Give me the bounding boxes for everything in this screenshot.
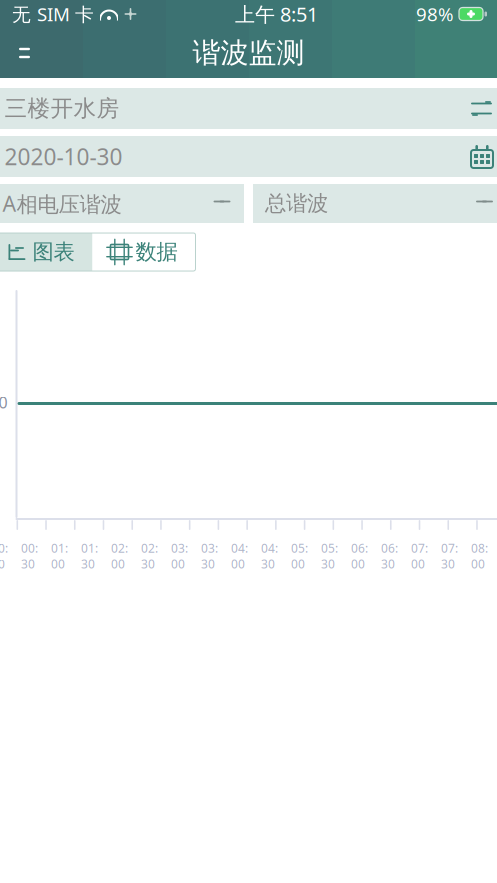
staticText: 03:00 xyxy=(171,540,188,572)
button[interactable]: 总谐波 xyxy=(253,184,497,223)
staticText: 07:00 xyxy=(411,540,428,572)
button[interactable]: 图表 xyxy=(0,233,92,271)
button[interactable]: 返回 xyxy=(0,30,52,76)
button[interactable]: 三楼开水房 xyxy=(0,88,497,129)
staticText: 三楼开水房 xyxy=(4,95,119,122)
staticText: 01:00 xyxy=(51,540,68,572)
staticText: 98% xyxy=(416,2,454,26)
staticText: 02:30 xyxy=(141,540,158,572)
staticText: 05:30 xyxy=(321,540,338,572)
button[interactable]: A相电压谐波 xyxy=(0,184,244,223)
staticText: 谐波监测 xyxy=(192,36,304,70)
staticText: 图表 xyxy=(32,239,74,265)
staticText: 数据 xyxy=(135,239,177,265)
staticText: 总谐波 xyxy=(265,190,328,217)
staticText: 06:00 xyxy=(351,540,368,572)
staticText: 02:00 xyxy=(111,540,128,572)
staticText: 00:30 xyxy=(21,540,38,572)
staticText: 05:00 xyxy=(291,540,308,572)
staticText: 04:00 xyxy=(231,540,248,572)
staticText: A相电压谐波 xyxy=(2,189,121,218)
staticText: 上午 8:51 xyxy=(235,1,318,27)
staticText: 无 SIM 卡 xyxy=(12,2,94,26)
staticText: 08:00 xyxy=(471,540,488,572)
staticText: 07:30 xyxy=(441,540,458,572)
button[interactable]: 数据 xyxy=(92,233,195,271)
staticText: 03:30 xyxy=(201,540,218,572)
staticText: 2020-10-30 xyxy=(4,141,122,171)
staticText: 00:00 xyxy=(0,540,8,572)
button[interactable]: 2020-10-30 xyxy=(0,136,497,177)
staticText: 04:30 xyxy=(261,540,278,572)
staticText: 0 xyxy=(0,392,7,413)
staticText: 01:30 xyxy=(81,540,98,572)
staticText: 06:30 xyxy=(381,540,398,572)
